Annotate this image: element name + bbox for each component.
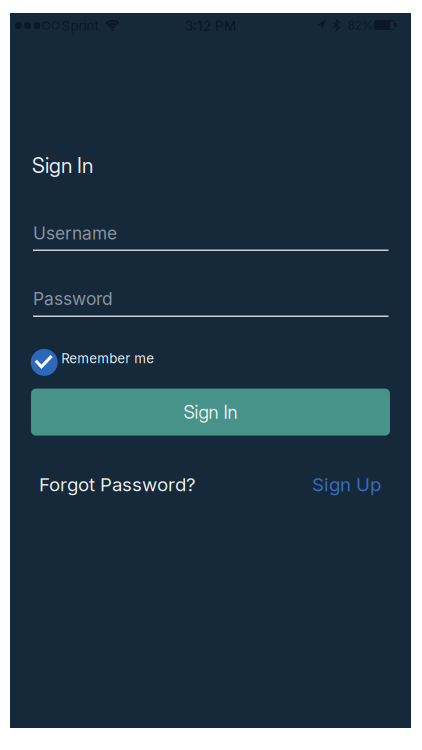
staticText: Sign In bbox=[32, 153, 93, 178]
staticText: Password bbox=[33, 288, 113, 309]
button[interactable]: Sign Up bbox=[32, 473, 381, 495]
staticText: Sign Up bbox=[312, 473, 381, 495]
staticText: Forgot Password? bbox=[39, 473, 196, 495]
staticText: 82% bbox=[348, 18, 374, 32]
button[interactable]: Remember me bbox=[31, 349, 154, 376]
staticText: Sprint bbox=[62, 18, 99, 34]
staticText: 3:12 PM bbox=[185, 18, 236, 34]
staticText: Sign In bbox=[183, 401, 237, 423]
staticText: Username bbox=[33, 223, 117, 243]
button[interactable]: Sign In bbox=[31, 389, 390, 436]
staticText: Remember me bbox=[61, 350, 154, 366]
button[interactable]: Forgot Password? bbox=[39, 473, 196, 495]
